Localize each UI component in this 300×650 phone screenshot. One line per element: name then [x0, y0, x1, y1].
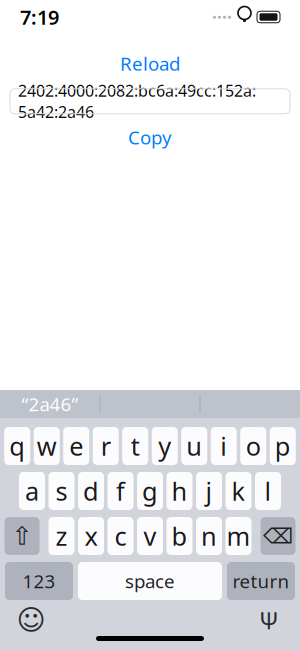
- staticText: i: [220, 429, 227, 463]
- button[interactable]: “2a46”: [0, 390, 99, 418]
- staticText: b: [171, 519, 187, 553]
- button[interactable]: d: [78, 472, 104, 510]
- button[interactable]: h: [166, 472, 192, 510]
- staticText: Ψ: [259, 604, 279, 636]
- staticText: a: [25, 474, 39, 508]
- button[interactable]: o: [240, 427, 266, 465]
- button[interactable]: f: [107, 472, 133, 510]
- button[interactable]: Delete: [260, 517, 295, 555]
- staticText: o: [246, 429, 261, 463]
- button[interactable]: 123: [5, 562, 73, 600]
- staticText: s: [55, 474, 67, 508]
- button[interactable]: w: [34, 427, 60, 465]
- staticText: f: [116, 474, 125, 508]
- staticText: z: [55, 519, 67, 553]
- button[interactable]: t: [122, 427, 148, 465]
- button[interactable]: l: [255, 472, 281, 510]
- staticText: d: [83, 474, 99, 508]
- staticText: ☺: [16, 604, 45, 636]
- button[interactable]: p: [270, 427, 296, 465]
- button[interactable]: Reload: [108, 46, 192, 81]
- staticText: c: [114, 519, 126, 553]
- button[interactable]: m: [225, 517, 251, 555]
- staticText: x: [84, 519, 97, 553]
- staticText: q: [9, 429, 25, 463]
- button[interactable]: Shift: [4, 517, 39, 555]
- button[interactable]: v: [137, 517, 163, 555]
- staticText: m: [226, 519, 250, 553]
- button[interactable]: q: [4, 427, 30, 465]
- button[interactable]: Emoji keyboard: [14, 605, 48, 635]
- staticText: ⌫: [263, 524, 293, 548]
- staticText: “2a46”: [21, 392, 78, 416]
- button[interactable]: e: [63, 427, 89, 465]
- staticText: 2402:4000:2082:bc6a:49cc:152a:5a42:2a46: [18, 80, 256, 122]
- staticText: 7:19: [20, 4, 59, 30]
- staticText: w: [37, 429, 57, 463]
- staticText: e: [69, 429, 83, 463]
- button[interactable]: x: [78, 517, 104, 555]
- button[interactable]: Dictation: [252, 605, 286, 635]
- staticText: k: [231, 474, 245, 508]
- button[interactable]: g: [137, 472, 163, 510]
- staticText: r: [101, 429, 111, 463]
- staticText: j: [205, 474, 212, 508]
- button[interactable]: j: [196, 472, 222, 510]
- staticText: 123: [22, 569, 55, 593]
- button[interactable]: Copy: [116, 120, 184, 155]
- staticText: u: [186, 429, 202, 463]
- staticText: v: [143, 519, 156, 553]
- staticText: ⇧: [11, 522, 32, 550]
- button[interactable]: a: [19, 472, 45, 510]
- button[interactable]: n: [196, 517, 222, 555]
- staticText: Reload: [120, 51, 180, 76]
- button[interactable]: s: [48, 472, 74, 510]
- button[interactable]: y: [152, 427, 178, 465]
- button[interactable]: k: [225, 472, 251, 510]
- button[interactable]: space: [78, 562, 222, 600]
- staticText: t: [131, 429, 140, 463]
- button[interactable]: b: [166, 517, 192, 555]
- staticText: Copy: [128, 125, 172, 150]
- staticText: l: [264, 474, 271, 508]
- button[interactable]: c: [107, 517, 133, 555]
- staticText: g: [142, 474, 158, 508]
- staticText: ····: [212, 5, 232, 28]
- button[interactable]: r: [93, 427, 119, 465]
- staticText: return: [232, 569, 289, 593]
- button[interactable]: return: [227, 562, 295, 600]
- button[interactable]: z: [48, 517, 74, 555]
- staticText: n: [201, 519, 217, 553]
- button[interactable]: u: [181, 427, 207, 465]
- staticText: h: [171, 474, 187, 508]
- staticText: y: [158, 429, 171, 463]
- staticText: p: [275, 429, 291, 463]
- button[interactable]: i: [211, 427, 237, 465]
- staticText: space: [125, 569, 175, 593]
